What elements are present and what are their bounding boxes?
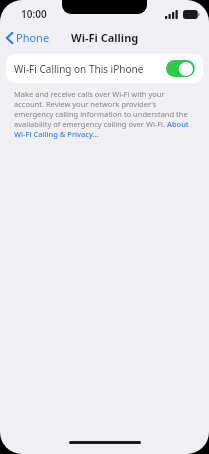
staticText: Wi-Fi Calling (71, 30, 139, 45)
staticText: 10:00 (21, 7, 47, 21)
button[interactable]: Wi-Fi Calling toggle, on (166, 60, 195, 77)
staticText: Make and receive calls over Wi-Fi with y… (14, 89, 195, 139)
staticText: Wi-Fi Calling on This iPhone (14, 62, 144, 76)
staticText: Phone (16, 30, 50, 45)
button[interactable]: Wi-Fi Calling on This iPhone (6, 54, 203, 83)
button[interactable]: Phone (0, 28, 56, 47)
